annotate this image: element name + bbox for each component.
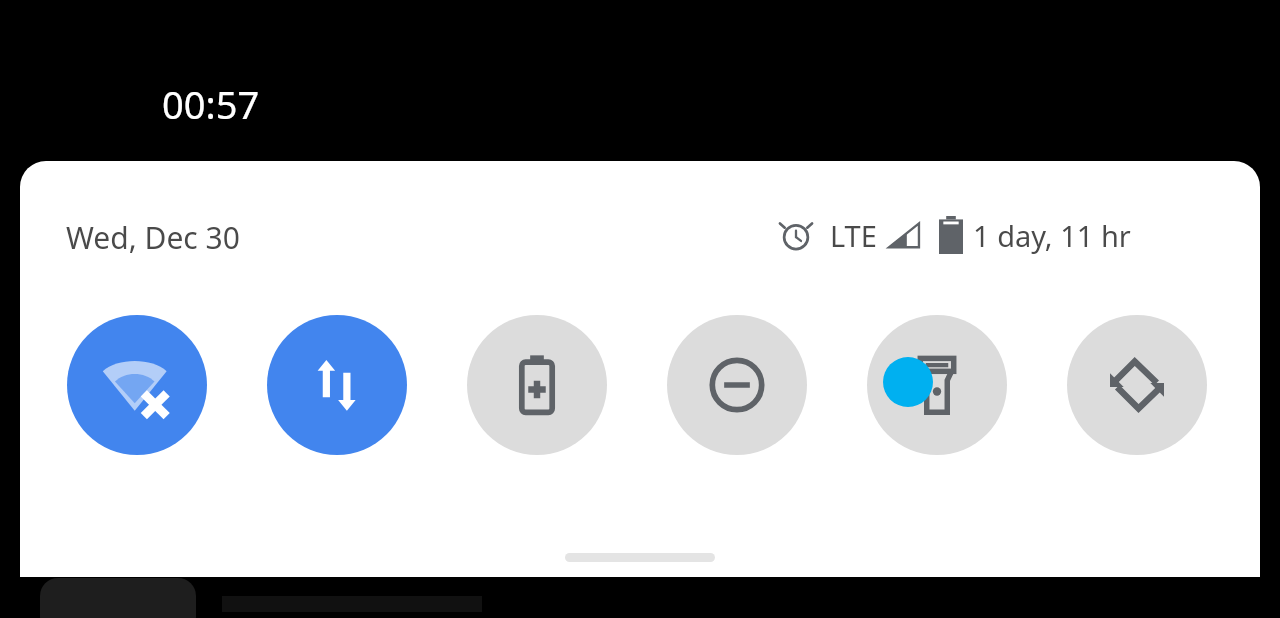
button[interactable]: Auto-rotate <box>1067 315 1207 455</box>
button[interactable]: Battery Saver <box>467 315 607 455</box>
button[interactable]: Do Not Disturb <box>667 315 807 455</box>
staticText: 00:57 <box>162 78 260 130</box>
other: Battery <box>939 216 963 254</box>
other: Alarm set <box>778 217 814 253</box>
staticText: 1 day, 11 hr <box>973 216 1131 255</box>
staticText: Wed, Dec 30 <box>66 217 240 258</box>
button[interactable]: Mobile data <box>267 315 407 455</box>
other: Mobile signal <box>887 218 921 252</box>
button[interactable]: Wi-Fi off <box>67 315 207 455</box>
staticText: LTE <box>830 216 877 255</box>
button[interactable]: Flashlight <box>867 315 1007 455</box>
